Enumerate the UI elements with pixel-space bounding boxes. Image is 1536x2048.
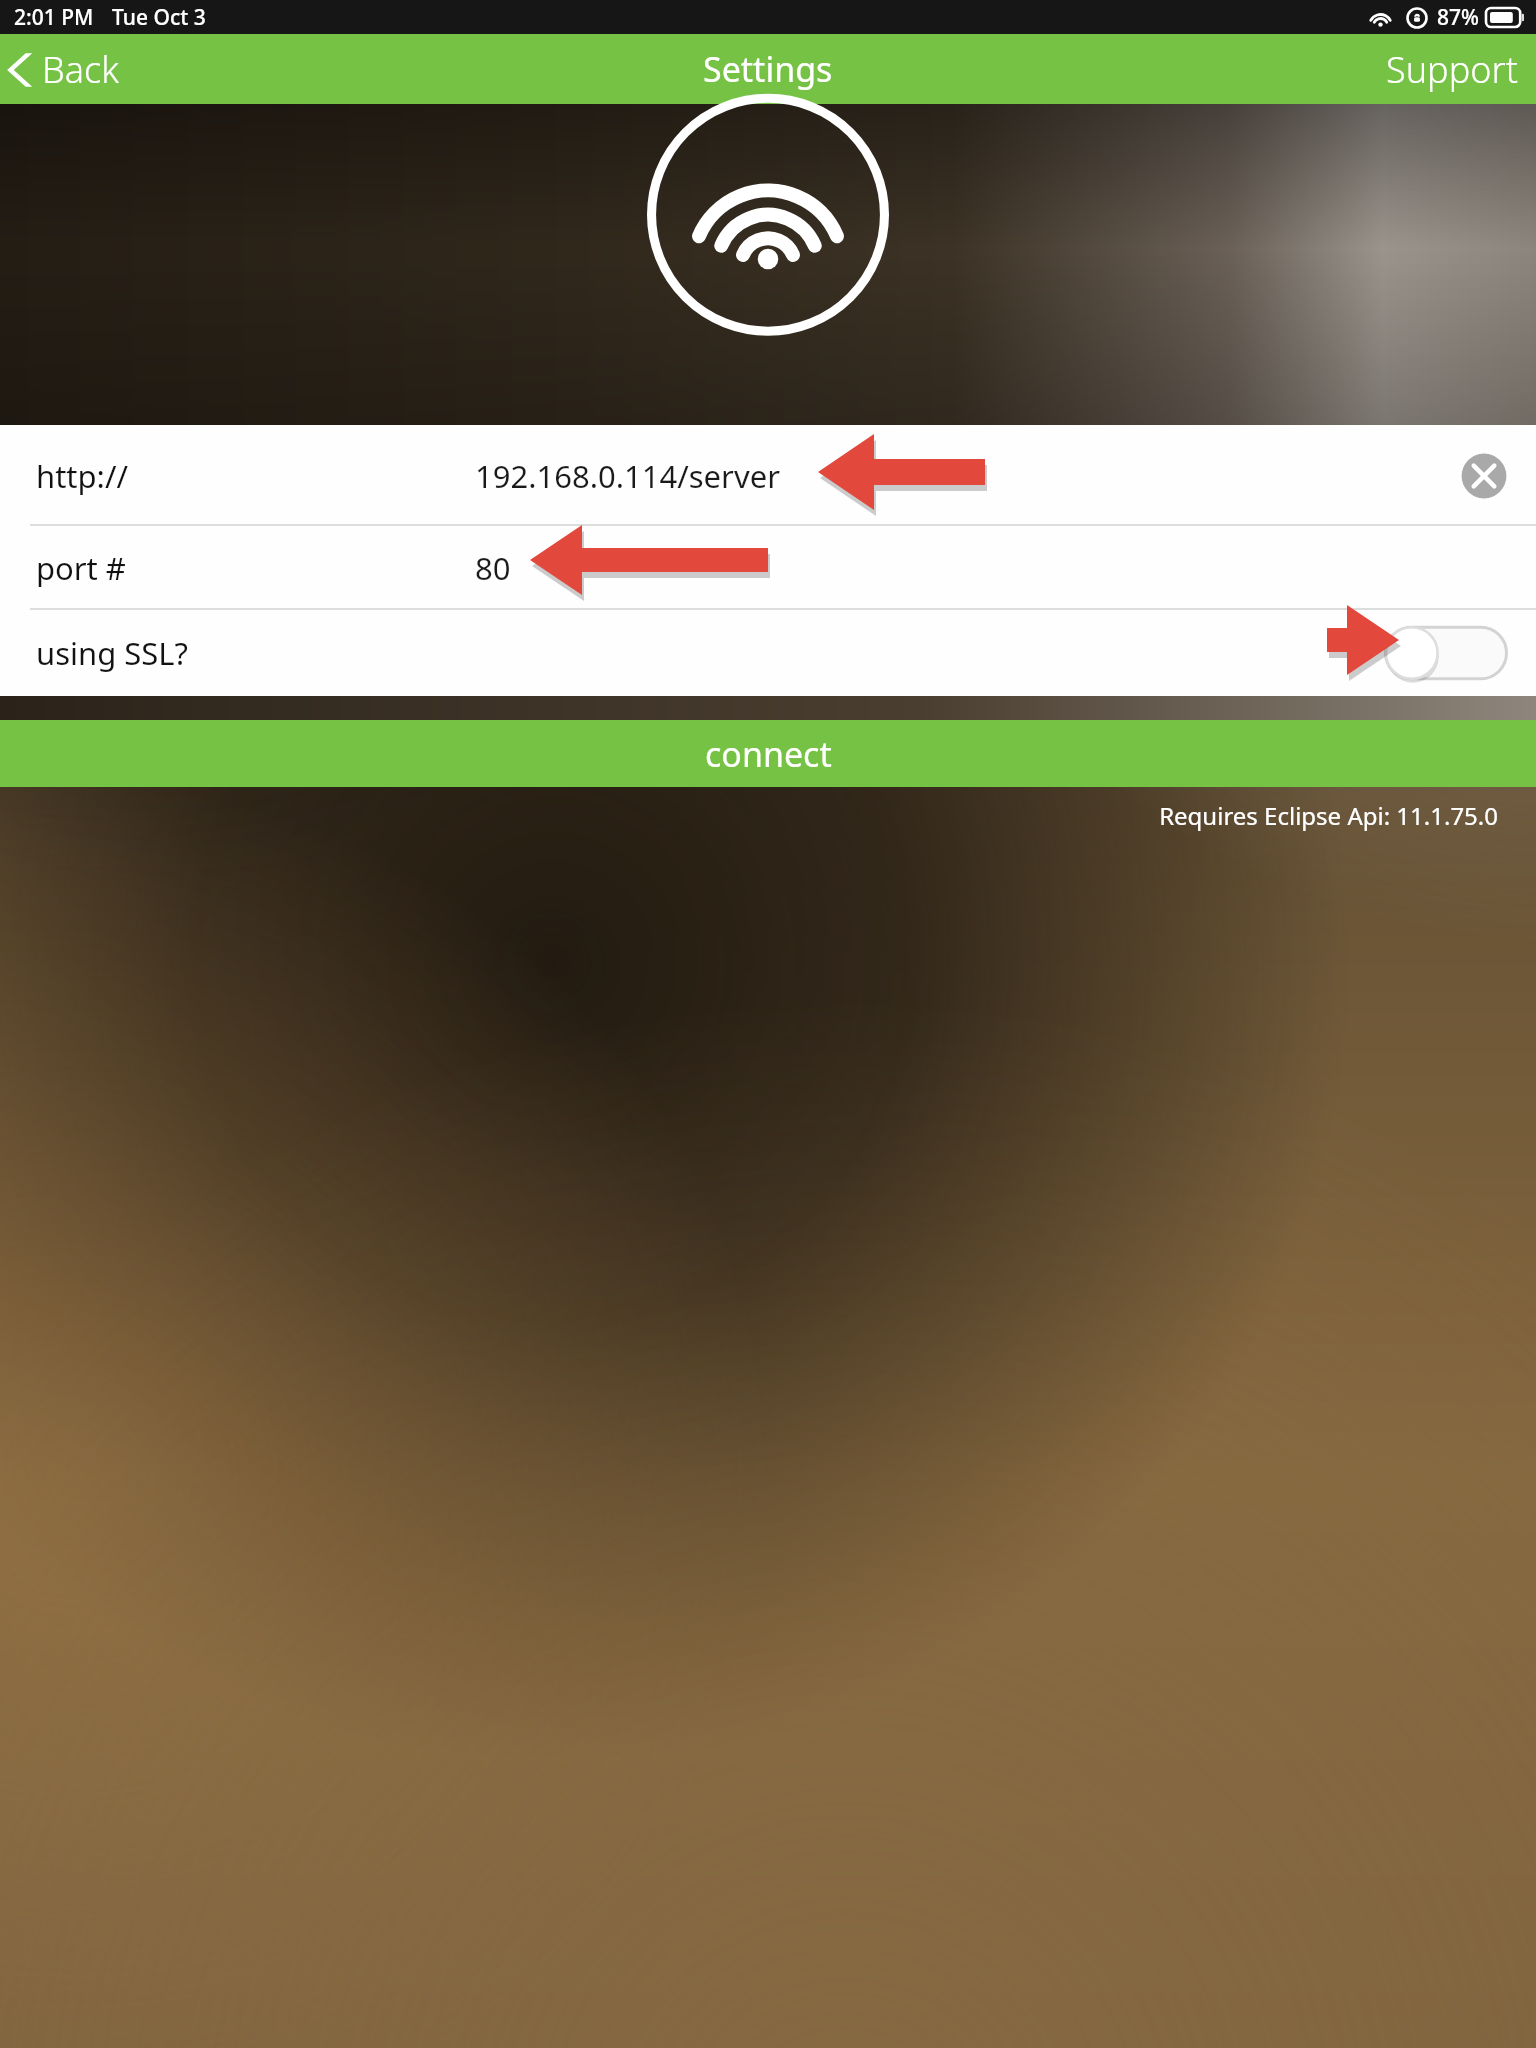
staticText: Requires Eclipse Api: 11.1.75.0 [1159, 799, 1498, 832]
staticText: 87% [1437, 3, 1479, 32]
button[interactable]: Clear address [1456, 448, 1512, 504]
button[interactable]: Using SSL toggle, off [1384, 618, 1508, 688]
staticText: Support [1386, 45, 1518, 94]
staticText: port # [36, 547, 126, 589]
staticText: Back [42, 45, 119, 94]
button[interactable]: http:// [0, 425, 1536, 526]
staticText: 80 [475, 547, 511, 589]
button[interactable]: Support [1368, 37, 1536, 102]
button[interactable]: Back [0, 37, 137, 102]
staticText: connect [705, 731, 832, 777]
button[interactable]: port # [0, 526, 1536, 610]
staticText: 2:01 PM [14, 3, 94, 32]
staticText: Tue Oct 3 [112, 3, 206, 32]
button[interactable]: connect [0, 720, 1536, 787]
staticText: 192.168.0.114/server [475, 455, 780, 497]
staticText: Settings [703, 46, 833, 92]
button[interactable]: using SSL? [0, 610, 1536, 696]
staticText: http:// [36, 455, 128, 497]
staticText: using SSL? [36, 632, 189, 674]
